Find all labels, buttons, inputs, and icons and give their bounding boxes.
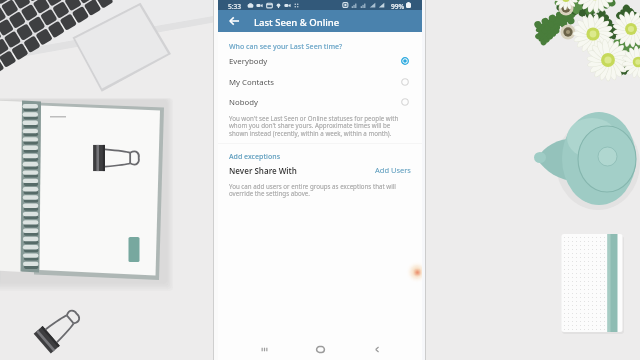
staticText: Add exceptions: [229, 152, 281, 162]
button[interactable]: Back: [224, 10, 244, 32]
staticText: Never Share With: [229, 165, 297, 176]
staticText: 5:33: [228, 2, 242, 11]
staticText: Nobody: [229, 97, 258, 108]
staticText: Add Users: [375, 165, 411, 175]
staticText: You won't see Last Seen or Online status…: [229, 114, 407, 138]
button[interactable]: Recent apps: [253, 338, 275, 360]
button[interactable]: Never Share With: [218, 162, 422, 178]
button[interactable]: Everybody: [218, 51, 422, 71]
staticText: Last Seen & Online: [254, 16, 340, 29]
staticText: 99%: [391, 2, 405, 11]
staticText: Everybody: [229, 56, 268, 67]
button[interactable]: Back: [366, 338, 388, 360]
button[interactable]: My Contacts: [218, 72, 422, 92]
button[interactable]: Home: [309, 338, 331, 360]
staticText: My Contacts: [229, 77, 275, 88]
button[interactable]: Nobody: [218, 92, 422, 112]
staticText: Who can see your Last Seen time?: [229, 42, 343, 52]
staticText: You can add users or entire groups as ex…: [229, 182, 407, 198]
